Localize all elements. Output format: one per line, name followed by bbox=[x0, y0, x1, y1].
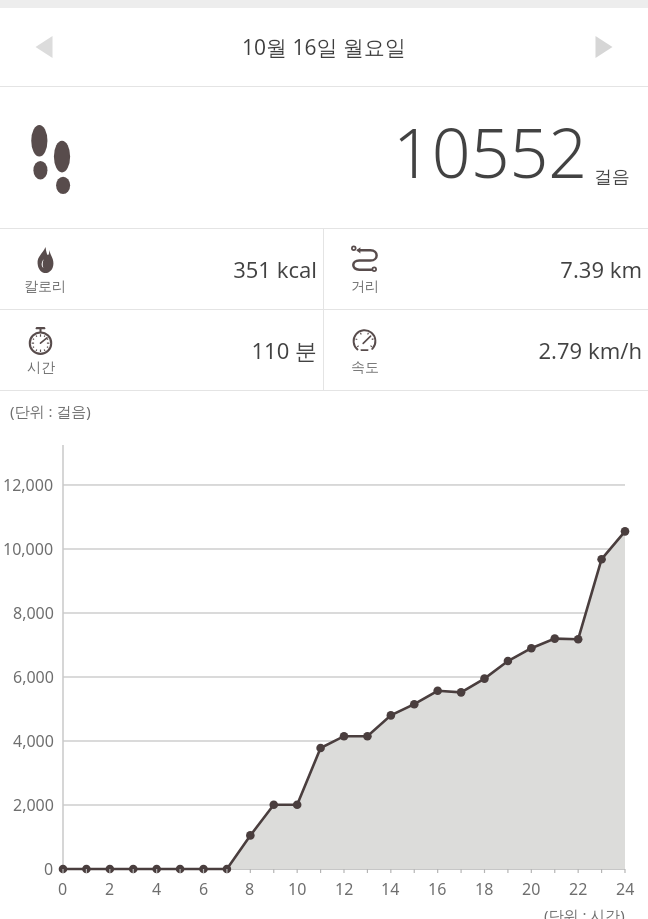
button[interactable]: 0 bbox=[0, 421, 648, 919]
staticText: 6 bbox=[199, 878, 209, 900]
staticText: 7.39 km bbox=[560, 254, 642, 284]
staticText: 18 bbox=[475, 878, 494, 900]
staticText: 8,000 bbox=[13, 602, 54, 624]
staticText: 걸음 bbox=[594, 166, 630, 189]
staticText: 10 bbox=[288, 878, 307, 900]
staticText: 2 bbox=[105, 878, 115, 900]
staticText: 8 bbox=[245, 878, 255, 900]
staticText: 12 bbox=[335, 878, 354, 900]
staticText: 6,000 bbox=[13, 666, 54, 688]
button[interactable]: 속도 bbox=[324, 310, 648, 390]
staticText: 110 분 bbox=[251, 335, 317, 365]
staticText: 칼로리 bbox=[24, 278, 66, 296]
button[interactable]: 10552 bbox=[0, 87, 648, 228]
staticText: (단위 : 시간) bbox=[544, 905, 625, 919]
staticText: 14 bbox=[381, 878, 400, 900]
staticText: 0 bbox=[58, 878, 68, 900]
staticText: 2.79 km/h bbox=[538, 335, 642, 365]
staticText: 거리 bbox=[351, 278, 379, 296]
staticText: 24 bbox=[616, 878, 635, 900]
button[interactable]: 칼로리 bbox=[0, 229, 323, 309]
staticText: 20 bbox=[522, 878, 541, 900]
staticText: 12,000 bbox=[3, 474, 54, 496]
staticText: 0 bbox=[44, 858, 54, 880]
staticText: 10,000 bbox=[3, 538, 54, 560]
staticText: 10552 bbox=[393, 105, 588, 198]
staticText: 16 bbox=[428, 878, 447, 900]
button[interactable]: 거리 bbox=[324, 229, 648, 309]
staticText: 4 bbox=[152, 878, 162, 900]
button[interactable]: 시간 bbox=[0, 310, 323, 390]
button[interactable]: Next day bbox=[574, 17, 634, 77]
staticText: 시간 bbox=[27, 359, 55, 377]
staticText: 4,000 bbox=[13, 730, 54, 752]
staticText: (단위 : 걸음) bbox=[10, 401, 91, 421]
staticText: 351 kcal bbox=[233, 254, 317, 284]
staticText: 속도 bbox=[351, 359, 379, 377]
button[interactable]: Previous day bbox=[14, 17, 74, 77]
staticText: 22 bbox=[569, 878, 588, 900]
staticText: 2,000 bbox=[13, 794, 54, 816]
staticText: 10월 16일 월요일 bbox=[242, 33, 406, 62]
